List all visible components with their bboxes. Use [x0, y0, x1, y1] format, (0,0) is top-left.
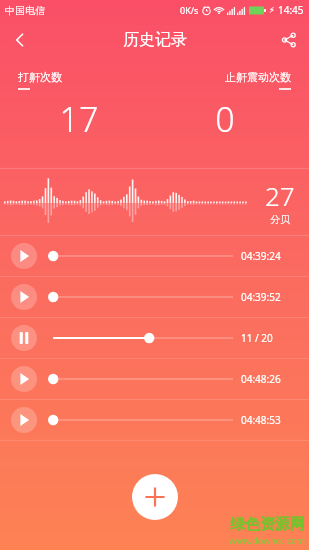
- button[interactable]: Pause: [11, 325, 37, 351]
- staticText: 04:48:26: [241, 372, 303, 386]
- button[interactable]: Back: [0, 20, 40, 60]
- staticText: 11 / 20: [241, 331, 303, 345]
- staticText: 04:39:52: [241, 290, 303, 304]
- button[interactable]: Play: [11, 284, 37, 310]
- staticText: 04:39:24: [241, 249, 303, 263]
- staticText: 中国电信: [5, 4, 45, 17]
- button[interactable]: Play: [11, 366, 37, 392]
- staticText: 打鼾次数: [18, 70, 62, 84]
- button[interactable]: 27: [0, 169, 309, 235]
- staticText: 04:48:53: [241, 413, 303, 427]
- button[interactable]: Add recording: [132, 474, 178, 520]
- button[interactable]: Share: [269, 20, 309, 60]
- staticText: 历史记录: [123, 30, 187, 50]
- button[interactable]: Play: [0, 359, 309, 399]
- staticText: 0K/s: [180, 4, 199, 16]
- staticText: www.downcc.com: [229, 534, 305, 546]
- button[interactable]: Play: [11, 243, 37, 269]
- button[interactable]: Play: [0, 236, 309, 276]
- button[interactable]: Pause: [0, 318, 309, 358]
- staticText: 27: [265, 178, 295, 213]
- button[interactable]: 止鼾震动次数: [159, 70, 291, 142]
- staticText: 17: [18, 96, 140, 142]
- staticText: 绿色资源网: [230, 515, 305, 534]
- button[interactable]: Play: [11, 407, 37, 433]
- staticText: ⚡: [269, 6, 275, 15]
- button[interactable]: Play: [0, 400, 309, 440]
- staticText: 止鼾震动次数: [225, 70, 291, 84]
- button[interactable]: Play: [0, 277, 309, 317]
- staticText: 14:45: [278, 3, 304, 17]
- staticText: 0: [159, 96, 291, 142]
- button[interactable]: 打鼾次数: [18, 70, 140, 142]
- staticText: 分贝: [270, 213, 290, 226]
